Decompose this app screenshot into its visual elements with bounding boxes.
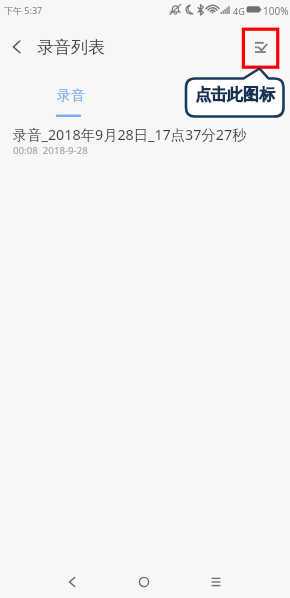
button[interactable]: Recent apps <box>196 566 236 598</box>
staticText: 00:08 2018-9-28 <box>13 144 88 157</box>
button[interactable]: Back <box>52 566 92 598</box>
staticText: 下午 5:37 <box>4 4 43 16</box>
staticText: 录音列表 <box>37 37 105 58</box>
staticText: 点击此图标 <box>195 85 275 105</box>
staticText: 100% <box>263 4 289 18</box>
button[interactable]: Home <box>124 566 164 598</box>
staticText: 4G <box>233 5 245 17</box>
button[interactable]: Back <box>1 28 33 66</box>
staticText: 录音_2018年9月28日_17点37分27秒 <box>13 125 247 145</box>
button[interactable]: 录音_2018年9月28日_17点37分27秒 <box>0 118 290 166</box>
button[interactable]: 录音 <box>42 78 98 120</box>
staticText: 录音 <box>57 87 85 105</box>
button[interactable]: Select recordings <box>242 27 280 69</box>
